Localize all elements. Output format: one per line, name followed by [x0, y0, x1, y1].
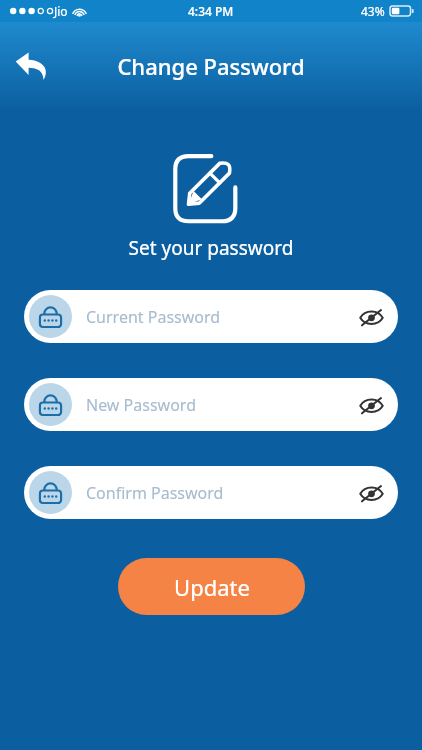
button[interactable]: Confirm Password — [24, 466, 398, 519]
button[interactable]: Update — [118, 558, 305, 615]
staticText: Confirm Password — [86, 482, 348, 504]
staticText: Change Password — [117, 51, 305, 81]
staticText: 43% — [361, 3, 385, 19]
button[interactable]: New Password — [24, 378, 398, 431]
staticText: 4:34 PM — [188, 3, 234, 19]
staticText: Set your password — [0, 235, 422, 261]
staticText: Update — [174, 572, 250, 602]
button[interactable]: Show password — [348, 382, 394, 428]
staticText: New Password — [86, 394, 348, 416]
staticText: Jio — [54, 3, 68, 19]
staticText: Current Password — [86, 306, 348, 328]
button[interactable]: Show password — [348, 294, 394, 340]
button[interactable]: Current Password — [24, 290, 398, 343]
button[interactable]: Show password — [348, 470, 394, 516]
button[interactable]: Back — [6, 40, 58, 92]
